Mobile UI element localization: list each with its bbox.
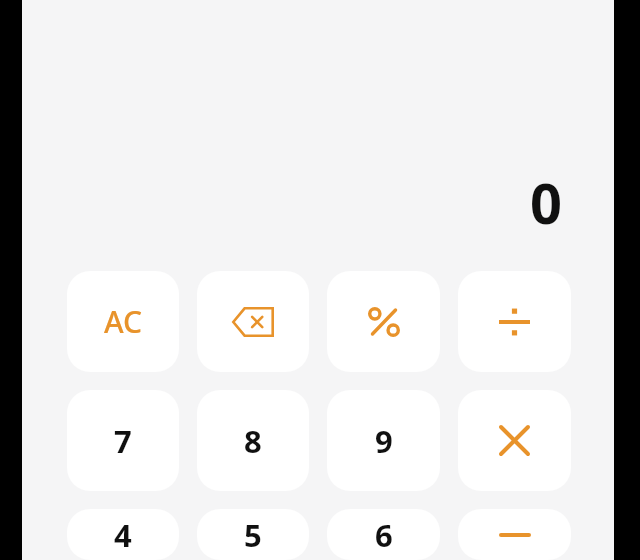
- button[interactable]: Multiply: [458, 390, 571, 491]
- button[interactable]: 6: [327, 509, 440, 560]
- staticText: AC: [104, 301, 143, 342]
- button[interactable]: 7: [67, 390, 179, 491]
- staticText: 5: [244, 514, 262, 556]
- button[interactable]: Percent: [327, 271, 440, 372]
- button[interactable]: 5: [197, 509, 309, 560]
- button[interactable]: 9: [327, 390, 440, 491]
- button[interactable]: Minus: [458, 509, 571, 560]
- button[interactable]: AC: [67, 271, 179, 372]
- staticText: 4: [114, 514, 132, 556]
- staticText: 8: [244, 420, 262, 462]
- button[interactable]: Backspace: [197, 271, 309, 372]
- staticText: 7: [114, 420, 132, 462]
- staticText: 0: [529, 164, 562, 240]
- staticText: 6: [375, 514, 393, 556]
- button[interactable]: 8: [197, 390, 309, 491]
- staticText: 9: [375, 420, 393, 462]
- button[interactable]: 4: [67, 509, 179, 560]
- button[interactable]: Divide: [458, 271, 571, 372]
